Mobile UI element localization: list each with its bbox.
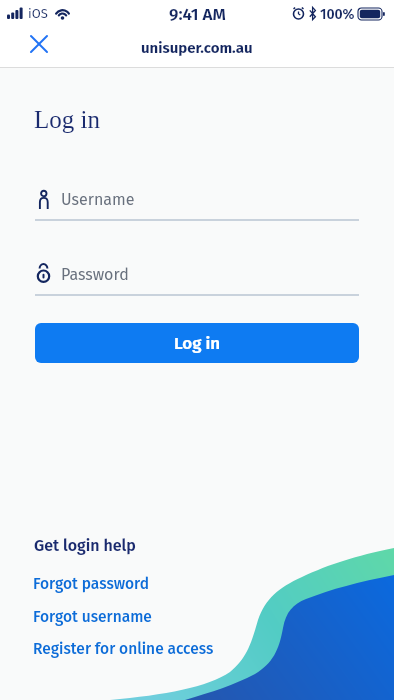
staticText: 100% [320, 6, 355, 23]
staticText: Log in [174, 333, 221, 353]
button[interactable]: Forgot password [33, 575, 150, 594]
staticText: Password [61, 265, 129, 284]
button[interactable]: Log in [35, 323, 359, 363]
button[interactable] [35, 180, 359, 222]
staticText: unisuper.com.au [141, 39, 253, 57]
staticText: 9:41 AM [169, 4, 226, 24]
button[interactable] [35, 255, 359, 297]
staticText: iOS [28, 6, 48, 22]
button[interactable] [19, 24, 59, 64]
button[interactable]: Forgot username [33, 608, 152, 627]
staticText: Log in [34, 106, 100, 134]
button[interactable]: Register for online access [33, 640, 214, 659]
staticText: Username [61, 190, 135, 209]
staticText: Get login help [34, 536, 136, 555]
